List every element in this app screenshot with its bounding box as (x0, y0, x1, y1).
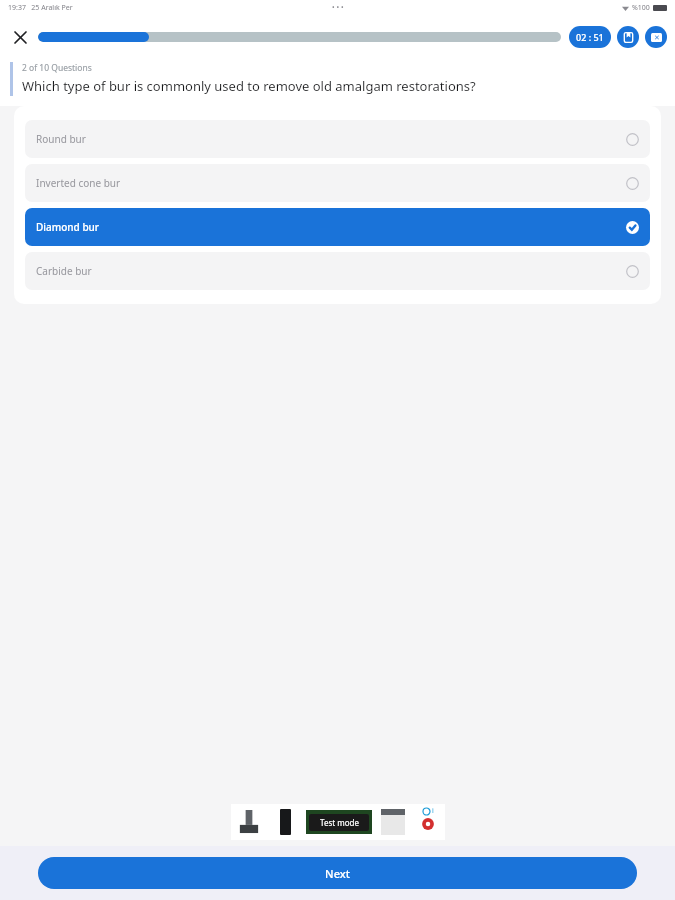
staticText: Next (325, 866, 350, 881)
button[interactable]: Inverted cone bur (25, 164, 650, 202)
button[interactable]: 02 : 51 (569, 26, 611, 48)
button[interactable]: Diamond bur (25, 208, 650, 246)
button[interactable]: Bookmark question (617, 26, 639, 48)
button[interactable]: Round bur (25, 120, 650, 158)
staticText: Diamond bur (36, 220, 100, 234)
staticText: Which type of bur is commonly used to re… (22, 77, 476, 95)
button[interactable]: Next (38, 857, 637, 889)
button[interactable]: Carbide bur (25, 252, 650, 290)
staticText: ✕ (654, 34, 660, 42)
staticText: 19:37 25 Aralık Per (8, 3, 73, 13)
staticText: 2 of 10 Questions (22, 62, 92, 74)
staticText: 02 : 51 (576, 31, 604, 43)
staticText: Test mode (320, 817, 359, 828)
staticText: Inverted cone bur (36, 176, 121, 190)
staticText: i (432, 806, 434, 816)
staticText: Round bur (36, 132, 86, 146)
button[interactable]: Test mode (231, 802, 445, 842)
staticText: • • • (332, 3, 344, 13)
staticText: %100 (632, 3, 650, 13)
button[interactable]: Options (645, 26, 667, 48)
button[interactable]: Close (8, 25, 32, 49)
staticText: Carbide bur (36, 264, 92, 278)
